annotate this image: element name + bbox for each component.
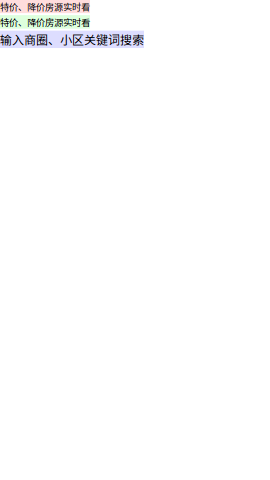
staticText: 特价、降价房源实时看 xyxy=(0,15,90,29)
staticText: 特价、降价房源实时看 xyxy=(0,0,90,13)
staticText: 输入商圈、小区关键词搜索 xyxy=(0,31,144,48)
